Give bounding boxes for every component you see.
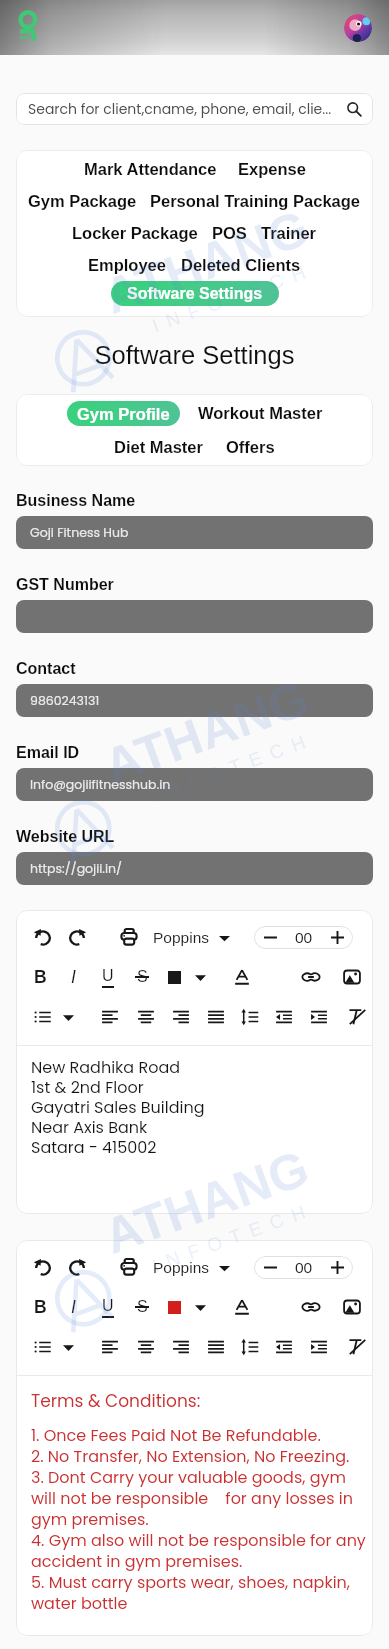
staticText: Personal Training Package xyxy=(150,192,361,210)
button[interactable]: Offers xyxy=(226,438,275,456)
button[interactable]: Indent xyxy=(308,1006,330,1028)
button[interactable]: https://gojii.in/ xyxy=(16,852,373,885)
button[interactable]: Insert image xyxy=(341,966,363,988)
button[interactable]: Goji logo xyxy=(12,9,50,47)
staticText: New Radhika Road 1st & 2nd Floor Gayatri… xyxy=(31,1056,205,1158)
button[interactable]: Redo xyxy=(66,926,88,948)
button[interactable]: Clear formatting xyxy=(346,1006,368,1028)
button[interactable]: Insert link xyxy=(300,1296,322,1318)
button[interactable]: Print xyxy=(118,1256,140,1278)
button[interactable]: Deleted Clients xyxy=(181,256,301,274)
button[interactable]: Decrease xyxy=(254,1256,286,1279)
button[interactable]: Poppins xyxy=(152,924,231,950)
button[interactable]: Line height xyxy=(239,1336,261,1358)
button[interactable]: Indent xyxy=(308,1336,330,1358)
button[interactable]: Search for client,cname, phone, email, c… xyxy=(16,93,373,125)
staticText: Employee xyxy=(88,256,166,274)
button[interactable]: Underline xyxy=(97,1296,119,1318)
button[interactable] xyxy=(16,600,373,633)
button[interactable]: Insert link xyxy=(300,966,322,988)
button[interactable]: Expense xyxy=(238,160,306,178)
staticText: Diet Master xyxy=(114,438,203,456)
button[interactable]: Print xyxy=(118,926,140,948)
button[interactable]: Personal Training Package xyxy=(150,192,361,210)
button[interactable]: Info@gojiifitnesshub.in xyxy=(16,768,373,801)
staticText: 00 xyxy=(295,929,313,946)
button[interactable]: Text colour xyxy=(231,966,253,988)
button[interactable]: Italic xyxy=(62,966,84,988)
staticText: Expense xyxy=(238,160,306,178)
staticText: 00 xyxy=(295,1259,313,1276)
staticText: Business Name xyxy=(16,492,136,510)
button[interactable]: Colour menu xyxy=(192,1299,208,1315)
staticText: Contact xyxy=(16,660,76,678)
button[interactable]: List style xyxy=(60,1339,76,1355)
button[interactable]: Increase xyxy=(321,926,353,949)
button[interactable]: Software Settings xyxy=(111,281,279,306)
staticText: https://gojii.in/ xyxy=(30,860,122,877)
button[interactable]: Mark Attendance xyxy=(84,160,217,178)
button[interactable]: Highlight colour xyxy=(164,967,184,987)
staticText: B xyxy=(34,1297,47,1317)
staticText: ATHANG xyxy=(97,199,317,325)
button[interactable]: Align centre xyxy=(135,1006,157,1028)
button[interactable]: Text colour xyxy=(231,1296,253,1318)
button[interactable]: Align left xyxy=(99,1336,121,1358)
button[interactable]: Bold xyxy=(29,1296,51,1318)
button[interactable]: Highlight colour xyxy=(164,1297,184,1317)
staticText: Poppins xyxy=(153,929,210,946)
button[interactable]: Undo xyxy=(32,1256,54,1278)
button[interactable]: Align right xyxy=(170,1006,192,1028)
button[interactable]: Outdent xyxy=(273,1006,295,1028)
staticText: Mark Attendance xyxy=(84,160,217,178)
button[interactable]: Employee xyxy=(88,256,166,274)
button[interactable]: Bulleted list xyxy=(32,1336,54,1358)
button[interactable]: Redo xyxy=(66,1256,88,1278)
staticText: Software Settings xyxy=(0,341,389,369)
button[interactable]: Locker Package xyxy=(72,224,198,242)
staticText: 9860243131 xyxy=(30,692,100,709)
staticText: I xyxy=(71,1297,76,1317)
staticText: Info@gojiifitnesshub.in xyxy=(30,776,171,793)
button[interactable]: Insert image xyxy=(341,1296,363,1318)
staticText: Software Settings xyxy=(127,285,263,303)
button[interactable]: Profile xyxy=(344,14,372,42)
button[interactable]: Justify xyxy=(205,1006,227,1028)
button[interactable]: Align centre xyxy=(135,1336,157,1358)
button[interactable]: Outdent xyxy=(273,1336,295,1358)
button[interactable]: POS xyxy=(212,224,247,242)
button[interactable]: Bold xyxy=(29,966,51,988)
button[interactable]: List style xyxy=(60,1009,76,1025)
button[interactable]: Italic xyxy=(62,1296,84,1318)
button[interactable]: Workout Master xyxy=(198,404,323,422)
button[interactable]: Clear formatting xyxy=(346,1336,368,1358)
button[interactable]: Trainer xyxy=(261,224,317,242)
button[interactable]: Strikethrough xyxy=(131,1296,153,1318)
button[interactable]: Undo xyxy=(32,926,54,948)
staticText: POS xyxy=(212,224,247,242)
button[interactable]: Colour menu xyxy=(192,969,208,985)
staticText: Workout Master xyxy=(198,404,323,422)
staticText: Trainer xyxy=(261,224,317,242)
button[interactable]: Diet Master xyxy=(114,438,203,456)
staticText: Website URL xyxy=(16,828,115,846)
staticText: Poppins xyxy=(153,1259,210,1276)
button[interactable]: Search xyxy=(346,101,362,117)
button[interactable]: Increase xyxy=(321,1256,353,1279)
button[interactable]: Underline xyxy=(97,966,119,988)
button[interactable]: Align right xyxy=(170,1336,192,1358)
staticText: Locker Package xyxy=(72,224,198,242)
button[interactable]: Align left xyxy=(99,1006,121,1028)
button[interactable]: Justify xyxy=(205,1336,227,1358)
staticText: I xyxy=(71,967,76,987)
button[interactable]: Bulleted list xyxy=(32,1006,54,1028)
button[interactable]: Line height xyxy=(239,1006,261,1028)
button[interactable]: Poppins xyxy=(152,1254,231,1280)
button[interactable]: Gym Profile xyxy=(67,401,180,426)
button[interactable]: Decrease xyxy=(254,926,286,949)
button[interactable]: 9860243131 xyxy=(16,684,373,717)
button[interactable]: Strikethrough xyxy=(131,966,153,988)
button[interactable]: Gym Package xyxy=(28,192,137,210)
button[interactable]: Goji Fitness Hub xyxy=(16,516,373,549)
staticText: Gym Profile xyxy=(77,405,170,423)
